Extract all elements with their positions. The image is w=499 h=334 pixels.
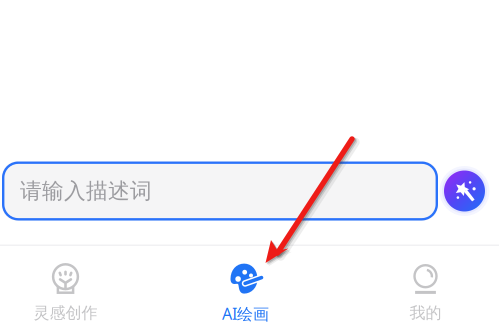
staticText: AI绘画 <box>222 303 269 324</box>
staticText: 请输入描述词 <box>20 177 152 205</box>
button[interactable]: AI绘画 <box>155 246 335 334</box>
staticText: 我的 <box>409 303 441 323</box>
button[interactable]: 生成图片 <box>444 170 485 211</box>
staticText: 灵感创作 <box>33 303 97 323</box>
button[interactable]: 我的 <box>335 246 499 334</box>
button[interactable]: 灵感创作 <box>0 246 155 334</box>
